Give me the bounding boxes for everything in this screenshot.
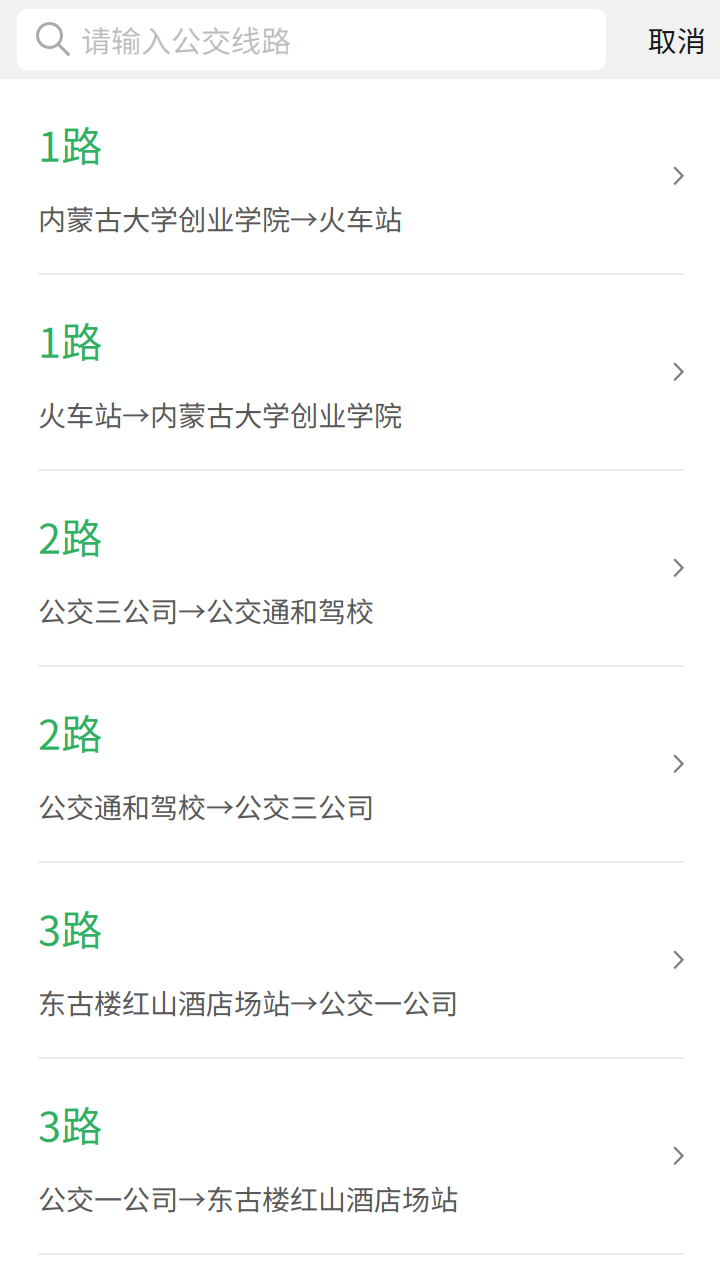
staticText: 取消 (648, 19, 706, 60)
staticText: 1路 (38, 114, 102, 174)
button[interactable]: 取消 (634, 9, 708, 70)
staticText: 公交一公司→东古楼红山酒店场站 (38, 1178, 458, 1218)
staticText: 火车站→内蒙古大学创业学院 (38, 394, 402, 434)
staticText: 2路 (38, 506, 102, 566)
staticText: 公交三公司→公交通和驾校 (38, 590, 374, 630)
staticText: 2路 (38, 702, 102, 762)
button[interactable]: 1路 (0, 275, 720, 471)
button[interactable]: 3路 (0, 863, 720, 1059)
button[interactable]: 1路 (0, 79, 720, 275)
button[interactable]: 3路 (0, 1059, 720, 1255)
staticText: 3路 (38, 898, 102, 958)
staticText: 1路 (38, 310, 102, 370)
staticText: 公交通和驾校→公交三公司 (38, 786, 374, 826)
staticText: 内蒙古大学创业学院→火车站 (38, 198, 402, 238)
button[interactable]: 2路 (0, 471, 720, 667)
staticText: 东古楼红山酒店场站→公交一公司 (38, 982, 458, 1022)
button[interactable]: 请输入公交线路 (17, 9, 606, 70)
button[interactable]: 2路 (0, 667, 720, 863)
staticText: 请输入公交线路 (81, 18, 291, 61)
staticText: 3路 (38, 1094, 102, 1154)
